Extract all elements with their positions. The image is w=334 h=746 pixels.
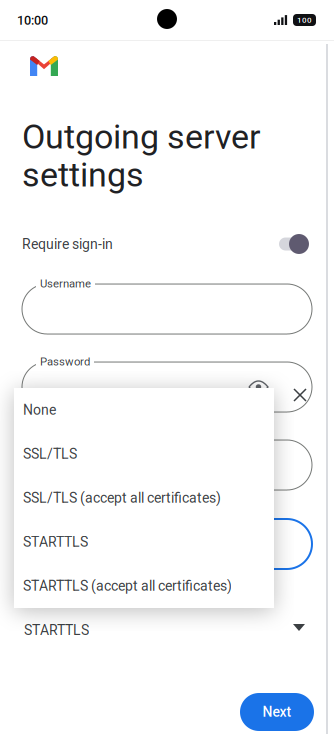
button[interactable]: Require sign-in bbox=[279, 234, 309, 254]
button[interactable]: Close bbox=[288, 383, 312, 407]
staticText: 100 bbox=[297, 15, 312, 25]
staticText: STARTTLS bbox=[24, 622, 89, 638]
staticText: STARTTLS (accept all certificates) bbox=[23, 578, 232, 594]
staticText: Next bbox=[262, 704, 291, 720]
button[interactable]: None bbox=[14, 388, 274, 432]
button[interactable]: STARTTLS (accept all certificates) bbox=[14, 564, 274, 608]
button[interactable]: STARTTLS bbox=[14, 520, 274, 564]
staticText: SSL/TLS bbox=[23, 446, 77, 462]
staticText: None bbox=[23, 402, 56, 418]
button[interactable]: Next bbox=[240, 693, 314, 731]
button[interactable]: SSL/TLS (accept all certificates) bbox=[14, 476, 274, 520]
staticText: 10:00 bbox=[17, 13, 48, 28]
staticText: Password bbox=[40, 355, 90, 368]
staticText: Require sign-in bbox=[22, 236, 113, 252]
staticText: settings bbox=[22, 155, 144, 195]
staticText: STARTTLS bbox=[23, 534, 88, 550]
button[interactable]: SSL/TLS bbox=[14, 432, 274, 476]
staticText: Username bbox=[40, 277, 91, 290]
staticText: SSL/TLS (accept all certificates) bbox=[23, 490, 221, 506]
button[interactable]: STARTTLS bbox=[21, 610, 313, 650]
staticText: Outgoing server bbox=[22, 117, 261, 157]
